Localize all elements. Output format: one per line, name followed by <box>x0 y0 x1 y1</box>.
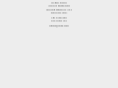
staticText: SENIOR MEDICAL ACT <box>0 7 118 10</box>
staticText: FAX 0166 191 <box>0 18 118 21</box>
button[interactable]: Fax number <box>0 18 118 21</box>
staticText: YOUNG DIRECTOR <box>0 4 118 7</box>
staticText: FAX 0166 191 <box>0 19 118 22</box>
staticText: COUNCIL OFF. <box>0 11 118 14</box>
staticText: HARRY SHOU <box>0 0 118 3</box>
staticText: TEL 0166 030 <box>0 15 118 18</box>
staticText: COUNCIL OFF. <box>0 10 118 13</box>
button[interactable]: Send email <box>0 23 118 27</box>
button[interactable]: Call telephone number <box>0 15 118 18</box>
button[interactable]: Organisation <box>0 7 118 15</box>
staticText: SENIOR MEDICAL ACT <box>0 8 118 11</box>
staticText: name@mail.com <box>0 24 118 27</box>
button[interactable]: Contact name <box>0 0 118 8</box>
staticText: YOUNG DIRECTOR <box>0 3 118 6</box>
staticText: HARRY SHOU <box>0 1 118 4</box>
staticText: TEL 0166 030 <box>0 16 118 19</box>
staticText: name@mail.com <box>0 23 118 26</box>
